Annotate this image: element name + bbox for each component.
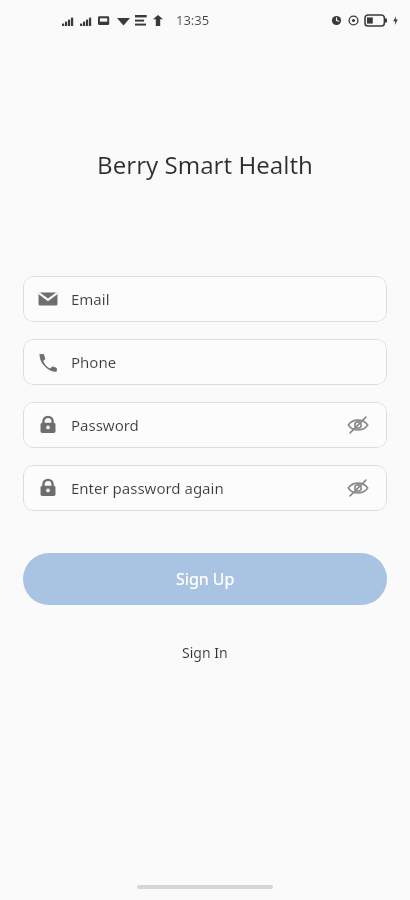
staticText: Password <box>71 415 139 435</box>
button[interactable]: Password <box>23 402 387 448</box>
button[interactable]: Email <box>23 276 387 322</box>
button[interactable]: Show password <box>343 473 373 503</box>
staticText: Enter password again <box>71 478 224 498</box>
button[interactable]: Enter password again <box>23 465 387 511</box>
button[interactable]: Phone <box>23 339 387 385</box>
staticText: Sign Up <box>176 568 235 590</box>
staticText: Email <box>71 289 110 309</box>
staticText: 13:35 <box>176 11 210 29</box>
button[interactable]: Sign Up <box>23 553 387 605</box>
staticText: Phone <box>71 352 117 372</box>
staticText: Sign In <box>182 643 228 662</box>
button[interactable]: Show password <box>343 410 373 440</box>
staticText: Berry Smart Health <box>97 148 313 181</box>
button[interactable]: Sign In <box>168 637 242 668</box>
